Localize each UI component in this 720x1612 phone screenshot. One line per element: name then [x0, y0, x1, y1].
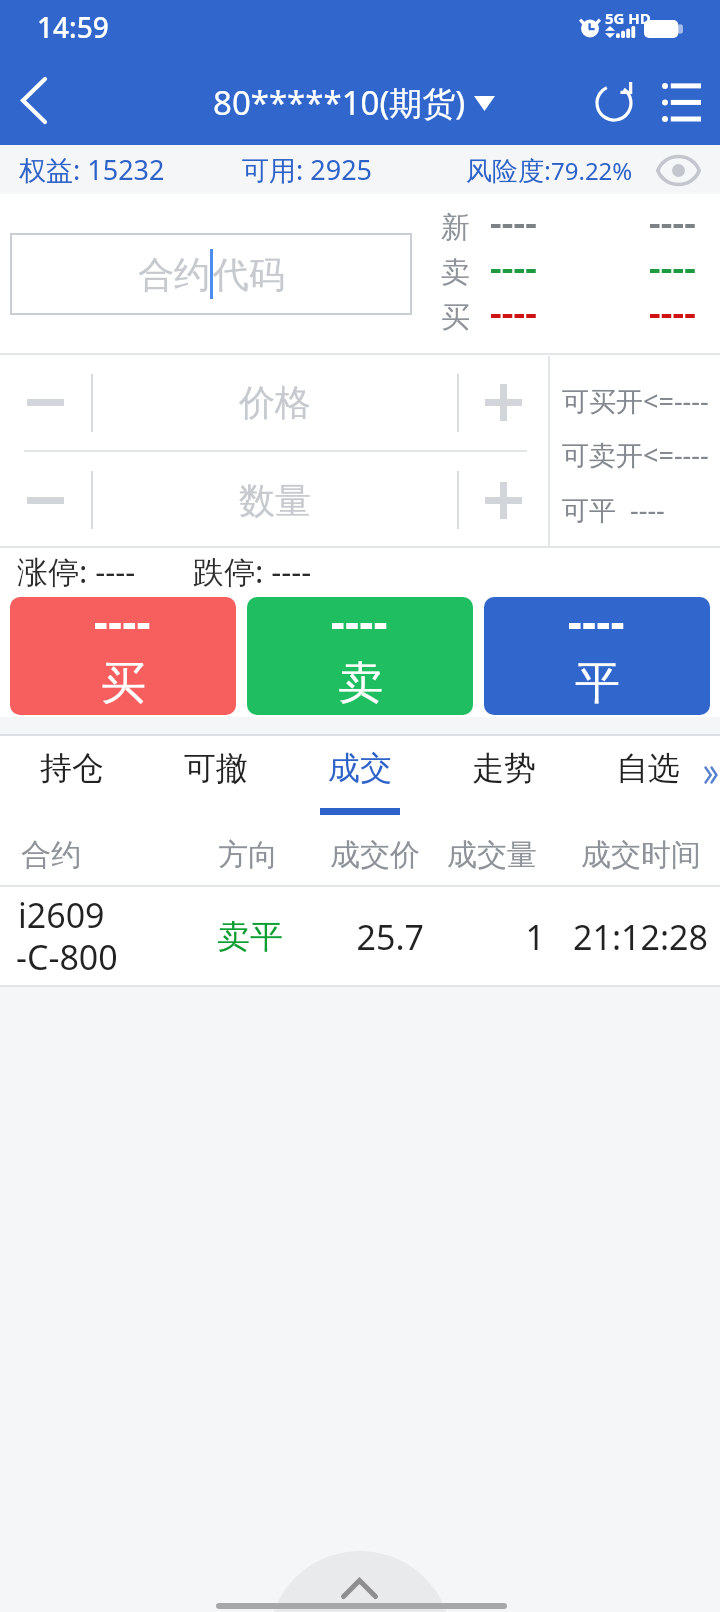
button[interactable]: More tabs [690, 734, 720, 815]
staticText: 可撤 [184, 748, 248, 788]
staticText: 卖平 [217, 916, 283, 958]
button[interactable]: i2609 [0, 887, 720, 987]
staticText: 可用: 2925 [242, 151, 373, 188]
staticText: 5G HD [605, 8, 651, 28]
button[interactable]: Decrease 数量 [0, 452, 91, 548]
button[interactable]: 可撤 [144, 734, 288, 815]
staticText: 平 [575, 655, 620, 712]
staticText: 价格 [239, 380, 311, 425]
button[interactable]: 持仓 [0, 734, 144, 815]
button[interactable]: Increase 数量 [458, 452, 548, 548]
staticText: 成交时间 [581, 836, 701, 874]
button[interactable]: Toggle balance visibility [653, 150, 703, 190]
staticText: 21:12:28 [0, 914, 708, 960]
staticText: 持仓 [40, 748, 104, 788]
staticText: 成交 [328, 748, 392, 788]
button[interactable]: 数量 [92, 452, 457, 548]
staticText: 合约 [21, 836, 81, 874]
button[interactable]: 价格 [92, 355, 457, 450]
staticText: 涨停: ---- [17, 550, 136, 592]
staticText: 买 [441, 299, 470, 333]
staticText: 新 [441, 209, 470, 243]
staticText: 代码 [213, 252, 285, 297]
button[interactable]: Increase 价格 [458, 355, 548, 450]
staticText: 25.7 [0, 914, 424, 960]
staticText: 成交价 [330, 836, 420, 874]
button[interactable]: Decrease 价格 [0, 355, 91, 450]
staticText: 14:59 [37, 8, 109, 46]
button[interactable]: 平 [484, 597, 710, 715]
staticText: 合约 [138, 252, 210, 297]
button[interactable]: 自选 [576, 734, 720, 815]
staticText: 卖 [441, 254, 470, 288]
staticText: 可卖开<=---- [562, 436, 709, 473]
button[interactable]: 合约 [10, 233, 412, 315]
staticText: 可买开<=---- [562, 382, 709, 419]
staticText: -C-800 [16, 934, 118, 980]
staticText: 自选 [616, 748, 680, 788]
staticText: 可平 ---- [562, 491, 665, 528]
staticText: 权益: 15232 [19, 151, 165, 188]
staticText: 跌停: ---- [193, 550, 312, 592]
button[interactable]: Menu [650, 60, 720, 145]
staticText: 走势 [472, 748, 536, 788]
staticText: i2609 [18, 892, 105, 938]
staticText: 成交量 [447, 836, 537, 874]
staticText: 买 [101, 655, 146, 712]
button[interactable]: Refresh [583, 60, 650, 145]
button[interactable]: Expand panel [341, 1578, 378, 1599]
button[interactable]: 成交 [288, 734, 432, 815]
staticText: 方向 [218, 836, 278, 874]
button[interactable]: Back [0, 60, 72, 145]
staticText: 1 [0, 914, 545, 960]
staticText: 数量 [239, 478, 311, 523]
button[interactable]: 走势 [432, 734, 576, 815]
staticText: 80*****10(期货) [213, 80, 466, 125]
staticText: 卖 [338, 655, 383, 712]
staticText: 79.22% [551, 154, 633, 187]
staticText: 风险度: [466, 152, 551, 188]
button[interactable]: 买 [10, 597, 236, 715]
button[interactable]: 卖 [247, 597, 473, 715]
